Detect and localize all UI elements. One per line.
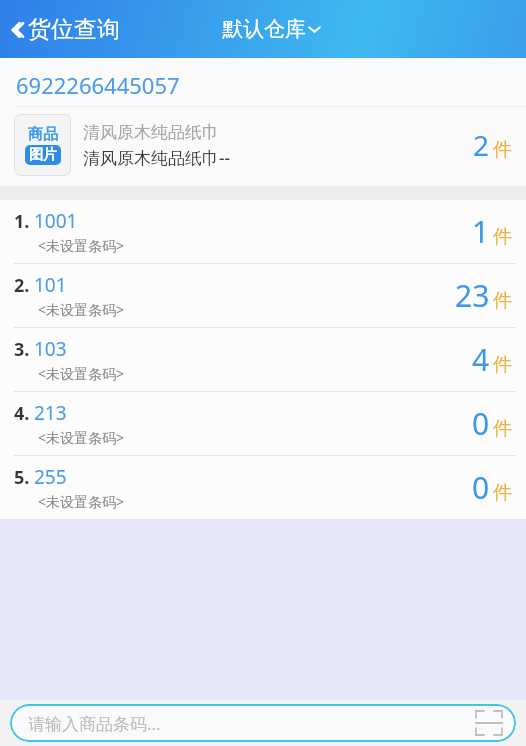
staticText: 件 bbox=[493, 417, 512, 441]
staticText: 6922266445057 bbox=[16, 70, 180, 100]
button[interactable]: 默认仓库 bbox=[218, 10, 325, 48]
staticText: 件 bbox=[493, 225, 512, 249]
staticText: 清风原木纯品纸巾-- bbox=[83, 146, 230, 169]
staticText: 件 bbox=[493, 289, 512, 313]
staticText: 0 bbox=[472, 403, 490, 444]
button[interactable]: 3. bbox=[0, 328, 526, 391]
button[interactable]: 2. bbox=[0, 264, 526, 327]
staticText: 4. bbox=[14, 401, 30, 426]
staticText: 清风原木纯品纸巾 bbox=[83, 122, 219, 143]
staticText: 1. bbox=[14, 209, 30, 234]
staticText: <未设置条码> bbox=[38, 236, 125, 255]
staticText: 5. bbox=[14, 465, 30, 490]
staticText: 图片 bbox=[29, 146, 57, 164]
staticText: 23 bbox=[455, 275, 490, 316]
staticText: <未设置条码> bbox=[38, 300, 125, 319]
button[interactable]: 6922266445057 bbox=[0, 58, 526, 186]
staticText: <未设置条码> bbox=[38, 428, 125, 447]
staticText: 货位查询 bbox=[28, 15, 120, 44]
button[interactable]: 请输入商品条码... bbox=[10, 704, 516, 742]
staticText: 2. bbox=[14, 273, 30, 298]
staticText: 2 bbox=[473, 126, 490, 164]
button[interactable]: 1. bbox=[0, 200, 526, 263]
staticText: 件 bbox=[493, 138, 512, 162]
staticText: 商品 bbox=[28, 125, 58, 144]
other: Back bbox=[8, 17, 24, 43]
staticText: 0 bbox=[472, 467, 490, 508]
staticText: 101 bbox=[34, 272, 67, 298]
staticText: 103 bbox=[34, 336, 67, 362]
staticText: 1 bbox=[472, 211, 490, 252]
button[interactable]: Scan barcode bbox=[476, 711, 502, 735]
staticText: 3. bbox=[14, 337, 30, 362]
staticText: 255 bbox=[34, 464, 67, 490]
staticText: 默认仓库 bbox=[222, 16, 306, 42]
button[interactable]: 5. bbox=[0, 456, 526, 519]
staticText: <未设置条码> bbox=[38, 364, 125, 383]
button[interactable]: Back bbox=[0, 9, 130, 50]
staticText: 请输入商品条码... bbox=[28, 712, 476, 735]
staticText: 件 bbox=[493, 481, 512, 505]
staticText: 件 bbox=[493, 353, 512, 377]
staticText: 1001 bbox=[34, 208, 78, 234]
staticText: 213 bbox=[34, 400, 67, 426]
staticText: <未设置条码> bbox=[38, 492, 125, 511]
button[interactable]: 4. bbox=[0, 392, 526, 455]
staticText: 4 bbox=[472, 339, 490, 380]
